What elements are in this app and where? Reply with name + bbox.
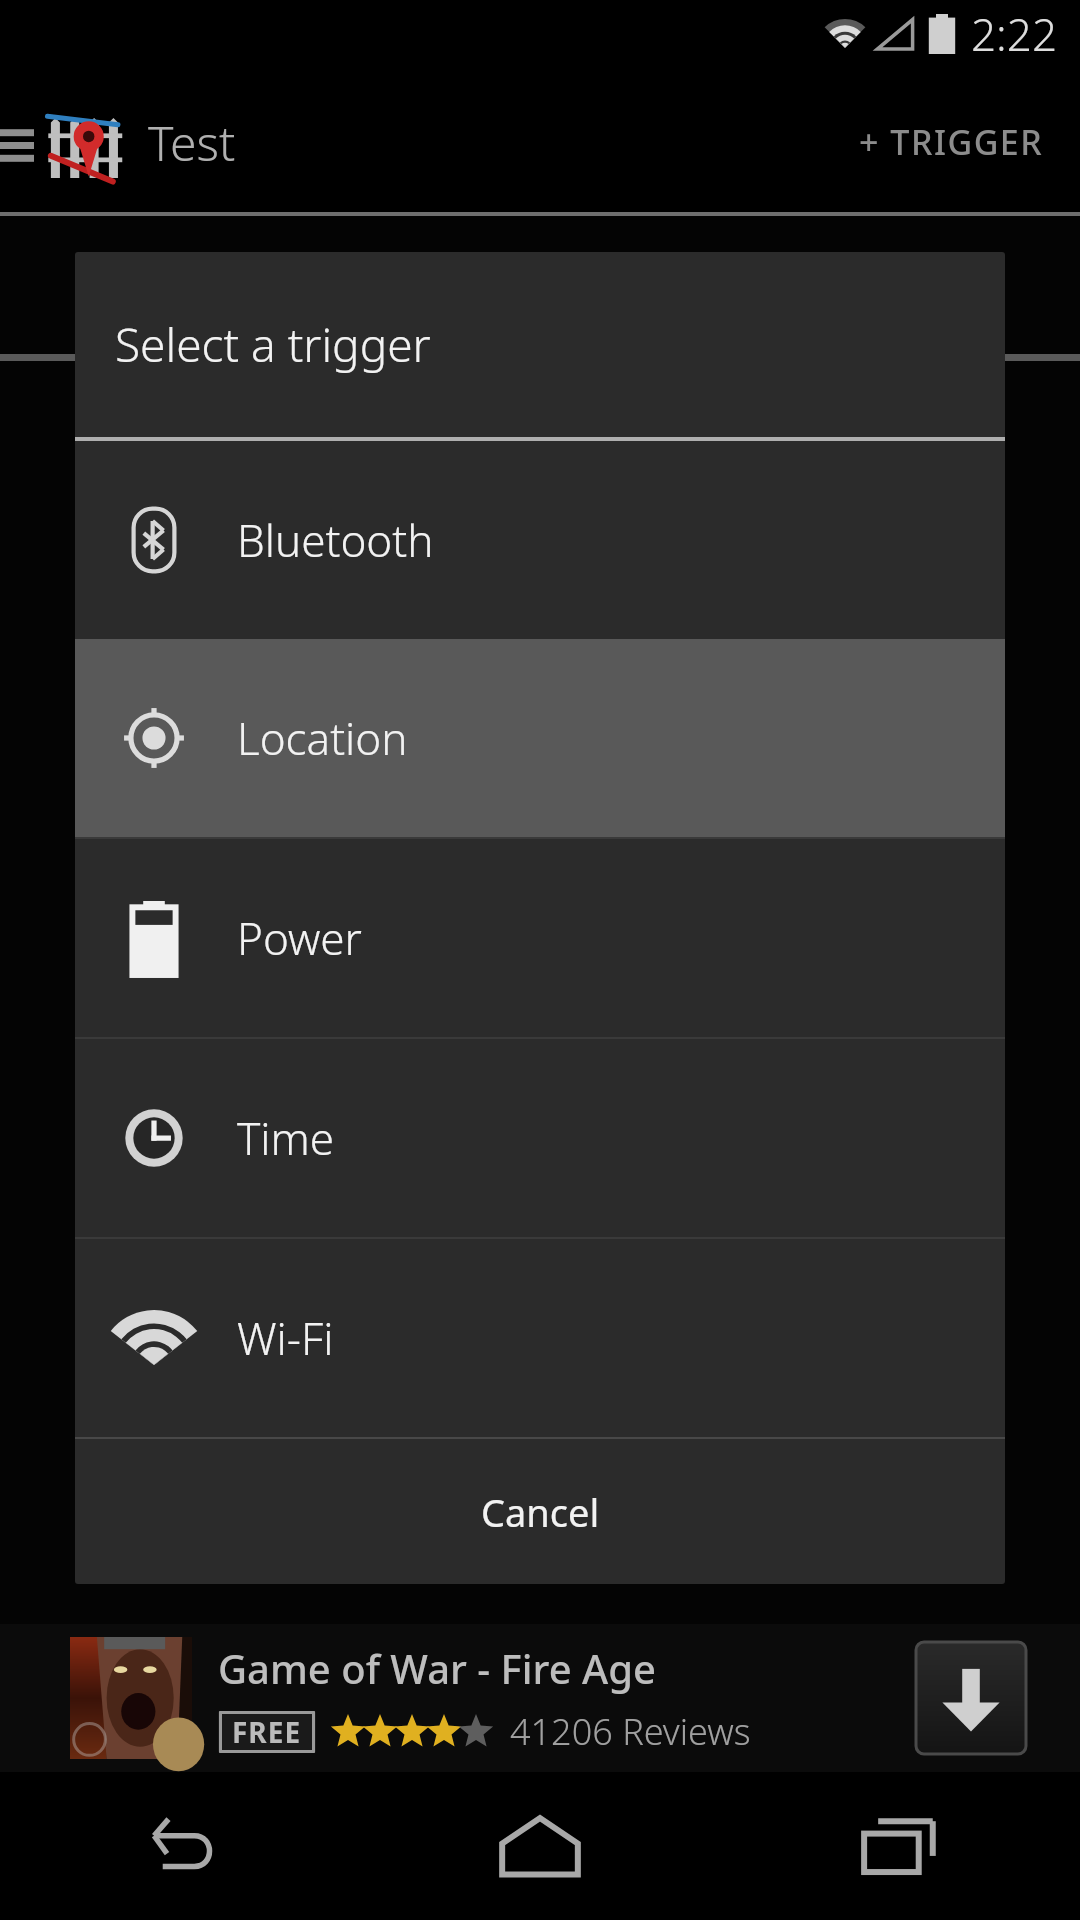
button[interactable]: + TRIGGER: [849, 101, 1054, 183]
staticText: 41206 Reviews: [510, 1707, 751, 1756]
button[interactable]: Home: [360, 1772, 720, 1920]
staticText: Power: [237, 908, 362, 968]
staticText: Wi-Fi: [237, 1308, 334, 1368]
staticText: Cancel: [481, 1486, 600, 1538]
staticText: Game of War - Fire Age: [218, 1641, 656, 1695]
button[interactable]: Bluetooth: [75, 441, 1005, 639]
staticText: + TRIGGER: [859, 119, 1044, 165]
staticText: Select a trigger: [115, 313, 431, 376]
button[interactable]: Cancel: [75, 1439, 1005, 1584]
button[interactable]: Navigation drawer: [0, 68, 34, 216]
staticText: FREE: [232, 1713, 302, 1751]
staticText: Location: [237, 708, 408, 768]
staticText: 2:22: [971, 4, 1058, 64]
button[interactable]: Location: [75, 639, 1005, 837]
button[interactable]: Wi-Fi: [75, 1239, 1005, 1437]
button[interactable]: Download: [916, 1642, 1026, 1754]
staticText: Test: [148, 110, 236, 175]
button[interactable]: Power: [75, 839, 1005, 1037]
button[interactable]: Recent apps: [720, 1772, 1080, 1920]
button[interactable]: Back: [0, 1772, 360, 1920]
button[interactable]: Time: [75, 1039, 1005, 1237]
staticText: Time: [237, 1108, 335, 1168]
staticText: Bluetooth: [237, 510, 434, 570]
